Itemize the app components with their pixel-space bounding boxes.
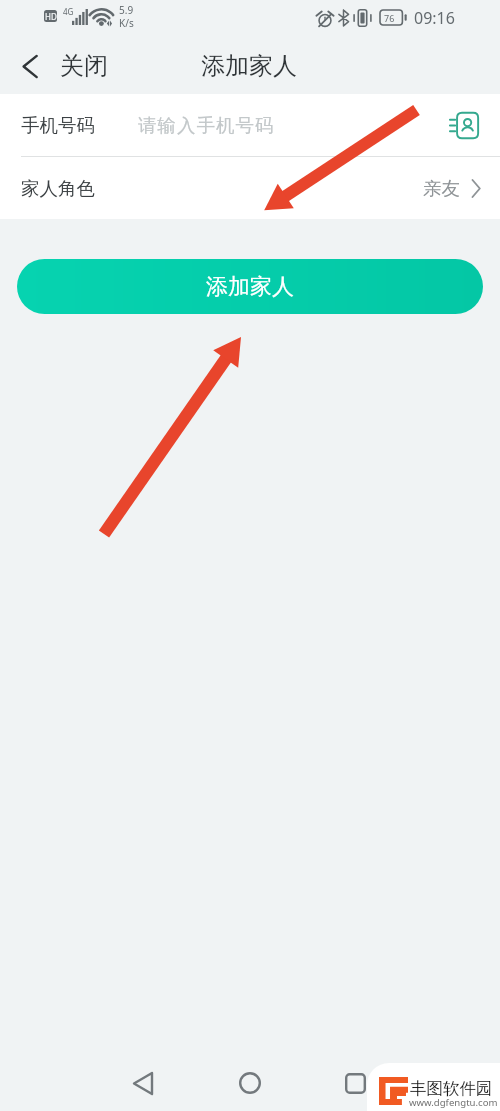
staticText: 手机号码: [21, 114, 95, 137]
button[interactable]: Home: [214, 1057, 286, 1109]
staticText: 丰图软件园: [410, 1078, 493, 1099]
button[interactable]: 手机号码: [0, 94, 500, 156]
staticText: 5.9: [119, 3, 134, 17]
button[interactable]: Recents: [319, 1057, 391, 1109]
button[interactable]: Choose from contacts: [444, 105, 484, 145]
button[interactable]: 关闭: [0, 38, 124, 94]
staticText: 4G: [63, 6, 74, 17]
staticText: 添加家人: [201, 51, 297, 81]
staticText: 76: [384, 12, 395, 24]
staticText: 请输入手机号码: [138, 114, 275, 137]
button[interactable]: 家人角色: [0, 157, 500, 219]
staticText: 添加家人: [206, 273, 294, 301]
button[interactable]: 添加家人: [17, 259, 483, 314]
staticText: 09:16: [414, 7, 455, 29]
staticText: 亲友: [423, 177, 460, 200]
staticText: www.dgfengtu.com: [409, 1096, 498, 1109]
staticText: HD: [45, 11, 57, 22]
staticText: 关闭: [60, 51, 108, 81]
staticText: 家人角色: [21, 177, 95, 200]
staticText: K/s: [119, 16, 134, 30]
button[interactable]: Back: [107, 1057, 179, 1109]
